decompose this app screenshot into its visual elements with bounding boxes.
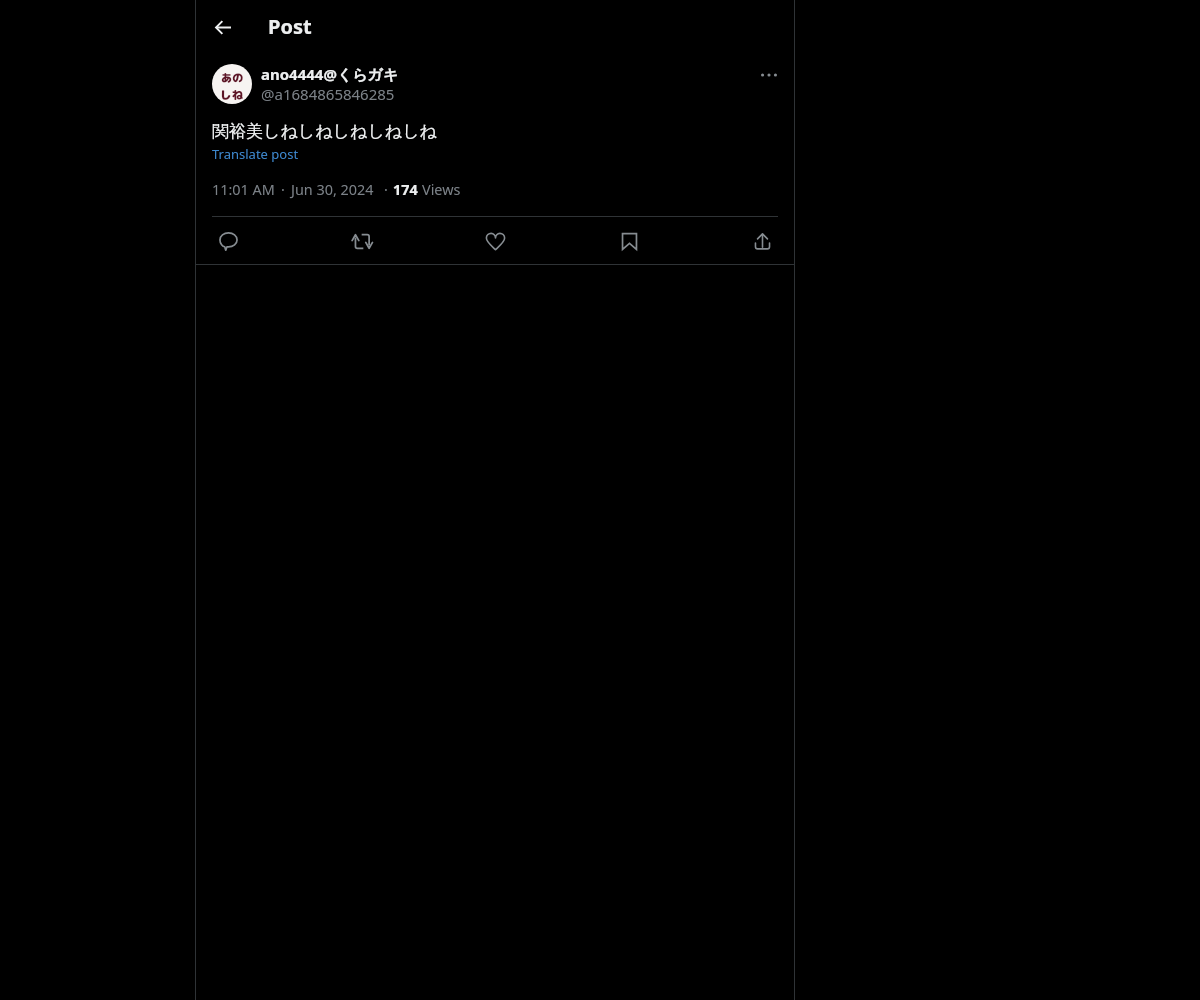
staticText: ano4444@くらガキ — [261, 64, 399, 84]
staticText: あの — [221, 70, 243, 85]
staticText: 関裕美しねしねしねしねしね — [212, 121, 437, 142]
button[interactable]: Like — [479, 225, 511, 257]
button[interactable]: Bookmark — [613, 225, 645, 257]
button[interactable]: Share — [746, 225, 778, 257]
button[interactable]: Repost — [346, 225, 378, 257]
staticText: @a1684865846285 — [261, 84, 395, 104]
staticText: · — [281, 180, 285, 200]
button[interactable]: Translate post — [212, 145, 299, 163]
staticText: Views — [422, 180, 461, 200]
staticText: 174 — [393, 180, 418, 200]
staticText: Post — [268, 13, 312, 40]
button[interactable]: Back — [204, 8, 242, 46]
button[interactable]: Profile picture — [212, 64, 252, 104]
staticText: · — [384, 180, 388, 200]
staticText: しね — [220, 87, 243, 103]
staticText: Jun 30, 2024 — [291, 180, 374, 200]
button[interactable]: More options — [752, 58, 786, 92]
button[interactable]: Reply — [212, 225, 244, 257]
staticText: Translate post — [212, 145, 299, 163]
staticText: 11:01 AM — [212, 180, 275, 200]
